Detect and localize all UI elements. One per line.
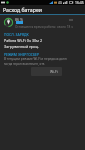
staticText: Оставшееся время работы: около 18 ч [15, 25, 73, 29]
staticText: ПОСЛ. ЗАРЯДК [4, 32, 29, 37]
button[interactable]: Работа Wi-Fi 0ч 30м 2 [0, 37, 85, 43]
staticText: 4G [58, 1, 63, 5]
staticText: Загруженный проц. [4, 44, 40, 49]
button[interactable]: Wi-Fi [31, 67, 62, 76]
staticText: РЕЖИМ ЭНЕРГОСБЕР [4, 52, 39, 57]
button[interactable]: Загруженный проц. [0, 43, 85, 49]
staticText: Wi-Fi [50, 69, 58, 74]
staticText: В текущем режиме Wi-Fi и передача данн к… [4, 57, 67, 66]
staticText: Расход батареи [3, 6, 42, 13]
staticText: 16:45 [75, 0, 84, 5]
staticText: 86 % [15, 17, 24, 22]
staticText: Работа Wi-Fi 0ч 30м 2 [4, 38, 43, 43]
